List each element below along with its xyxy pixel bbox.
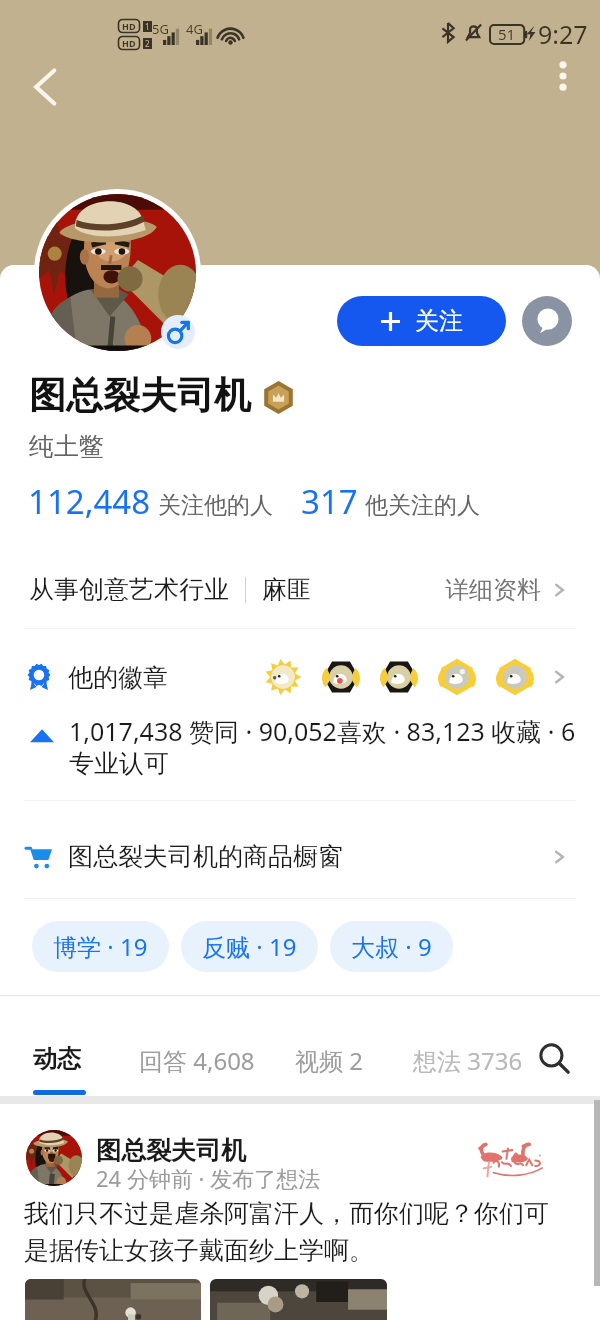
staticText: 51 (498, 24, 516, 44)
staticText: HD (122, 20, 136, 32)
staticText: 博学 · 19 (53, 930, 148, 963)
button[interactable]: 动态 (33, 1044, 81, 1074)
button[interactable]: Search (534, 1038, 574, 1078)
staticText: 我们只不过是虐杀阿富汗人，而你们呢？你们可是据传让女孩子戴面纱上学啊。 (24, 1198, 556, 1266)
button[interactable]: 他的徽章 (0, 644, 600, 710)
button[interactable]: 大叔 · 9 (330, 921, 453, 972)
button[interactable]: 图总裂夫司机的商品橱窗 (0, 814, 600, 898)
staticText: 24 分钟前 · 发布了想法 (96, 1163, 321, 1193)
staticText: 动态 (33, 1044, 81, 1074)
button[interactable]: 视频 2 (295, 1044, 363, 1077)
button[interactable]: 1,017,438 赞同 · 90,052喜欢 · 83,123 收藏 · 6 … (0, 714, 600, 780)
staticText: 1,017,438 赞同 · 90,052喜欢 · 83,123 收藏 · 6 … (69, 714, 578, 780)
button[interactable]: Send message (522, 296, 572, 346)
staticText: 5G (152, 20, 169, 38)
button[interactable]: 反贼 · 19 (181, 921, 318, 972)
button[interactable]: Back (20, 62, 70, 112)
button[interactable]: 关注 (337, 296, 506, 346)
staticText: 他的徽章 (68, 662, 168, 693)
staticText: 关注他的人 (158, 491, 273, 520)
staticText: 317 (301, 479, 358, 524)
staticText: 9:27 (538, 17, 588, 51)
staticText: 4G (186, 20, 203, 38)
staticText: 纯土鳖 (29, 431, 104, 462)
button[interactable]: More options (538, 51, 588, 101)
staticText: 图总裂夫司机 (29, 372, 251, 419)
staticText: 视频 2 (295, 1044, 363, 1077)
staticText: 图总裂夫司机的商品橱窗 (68, 841, 343, 872)
button[interactable]: 从事创意艺术行业 (0, 558, 600, 620)
staticText: 大叔 · 9 (351, 930, 432, 963)
staticText: 关注 (415, 306, 463, 336)
staticText: 回答 4,608 (139, 1044, 255, 1077)
staticText: 他关注的人 (365, 491, 480, 520)
button[interactable]: 回答 4,608 (139, 1044, 255, 1077)
button[interactable]: 博学 · 19 (32, 921, 169, 972)
button[interactable]: 112,448 (28, 479, 273, 524)
staticText: 反贼 · 19 (202, 930, 297, 963)
staticText: 112,448 (28, 479, 151, 524)
button[interactable]: 想法 3736 (413, 1044, 523, 1077)
staticText: 麻匪 (262, 574, 312, 605)
button[interactable]: 317 (301, 479, 480, 524)
staticText: HD (122, 37, 136, 49)
staticText: 想法 3736 (413, 1044, 523, 1077)
staticText: 2 (145, 38, 150, 49)
staticText: 图总裂夫司机 (96, 1135, 246, 1166)
staticText: 详细资料 (445, 575, 541, 605)
staticText: 1 (145, 21, 150, 32)
staticText: 从事创意艺术行业 (29, 574, 229, 605)
